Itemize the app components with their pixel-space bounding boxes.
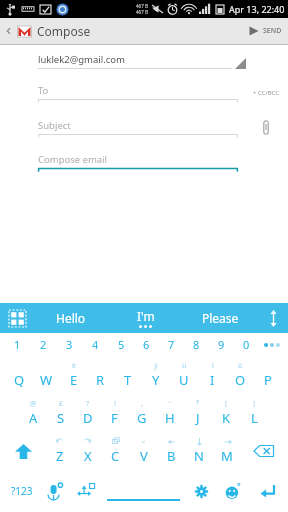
button[interactable]: I'm	[108, 303, 183, 333]
staticText: è	[72, 361, 76, 371]
button[interactable]: Space	[100, 470, 186, 512]
button[interactable]: + CC/BCC	[244, 83, 288, 103]
staticText: I'm	[137, 308, 155, 324]
staticText: luklek2@gmail.com	[38, 53, 125, 66]
staticText: B	[167, 447, 176, 465]
button[interactable]: ↑	[184, 394, 212, 432]
button[interactable]: ý	[142, 356, 170, 394]
button[interactable]: ù	[170, 356, 198, 394]
staticText: I	[210, 371, 215, 389]
staticText: 467 B	[136, 9, 148, 15]
staticText: 467 B	[136, 3, 148, 9]
staticText: SEND	[263, 26, 282, 36]
button[interactable]: Q	[6, 356, 33, 394]
button[interactable]: More symbols	[259, 333, 284, 356]
staticText: L	[251, 409, 258, 427]
button[interactable]: X	[73, 432, 101, 470]
button[interactable]: C	[101, 432, 129, 470]
button[interactable]: Shift	[2, 432, 45, 470]
staticText: E	[70, 371, 78, 389]
staticText: 5	[118, 337, 125, 352]
button[interactable]: ì	[198, 356, 226, 394]
staticText: )	[253, 399, 256, 409]
button[interactable]: ò	[226, 356, 254, 394]
button[interactable]: 1	[4, 333, 30, 356]
button[interactable]: Clipboard	[0, 303, 34, 333]
button[interactable]: è	[60, 356, 87, 394]
staticText: Please	[202, 310, 239, 326]
staticText: ù	[182, 361, 187, 371]
button[interactable]: 9	[209, 333, 234, 356]
button[interactable]: V	[129, 432, 157, 470]
button[interactable]: ?	[74, 394, 101, 432]
button[interactable]: N	[185, 432, 213, 470]
button[interactable]: Expand suggestions	[258, 303, 288, 333]
button[interactable]: Back	[4, 18, 14, 44]
staticText: ì	[212, 361, 214, 371]
button[interactable]: Enter	[249, 470, 285, 512]
button[interactable]: Emoji	[216, 470, 249, 512]
staticText: U	[179, 371, 189, 389]
button[interactable]: ,	[128, 394, 156, 432]
button[interactable]: Attach file	[244, 116, 288, 138]
staticText: @	[30, 399, 37, 409]
staticText: G	[137, 409, 147, 427]
staticText: W	[40, 371, 53, 389]
button[interactable]: M	[213, 432, 241, 470]
staticText: Z	[56, 447, 64, 465]
staticText: Compose	[37, 23, 91, 39]
button[interactable]: 5	[108, 333, 134, 356]
staticText: Apr 13, 22:40	[229, 3, 285, 15]
staticText: D	[83, 409, 93, 427]
button[interactable]: @	[20, 394, 47, 432]
staticText: ?123	[11, 484, 33, 498]
staticText: 8	[193, 337, 200, 352]
staticText: 1	[14, 337, 21, 352]
button[interactable]: 0	[234, 333, 259, 356]
button[interactable]: W	[33, 356, 60, 394]
button[interactable]: 4	[82, 333, 108, 356]
staticText: T	[124, 371, 132, 389]
button[interactable]: T	[114, 356, 142, 394]
staticText: Y	[152, 371, 160, 389]
button[interactable]: !	[101, 394, 128, 432]
staticText: C	[111, 447, 120, 465]
button[interactable]: 8	[184, 333, 209, 356]
button[interactable]: Please	[183, 303, 258, 333]
staticText: 9	[218, 337, 225, 352]
button[interactable]: ?123	[3, 470, 40, 512]
button[interactable]: Move cursor	[70, 470, 100, 512]
staticText: V	[140, 447, 148, 465]
staticText: To	[38, 84, 49, 97]
button[interactable]: Z	[45, 432, 73, 470]
button[interactable]: £	[47, 394, 74, 432]
button[interactable]: 6	[134, 333, 159, 356]
staticText: H	[165, 409, 175, 427]
staticText: 0	[243, 337, 250, 352]
button[interactable]: P	[254, 356, 282, 394]
staticText: £	[59, 399, 64, 409]
button[interactable]: Select account	[232, 51, 246, 69]
button[interactable]: Backspace	[241, 432, 286, 470]
staticText: ý	[154, 361, 158, 371]
button[interactable]: '	[156, 394, 184, 432]
staticText: ?	[86, 399, 90, 409]
staticText: Compose email	[38, 153, 108, 166]
staticText: + CC/BCC	[253, 89, 280, 97]
button[interactable]: Settings	[186, 470, 216, 512]
button[interactable]: )	[240, 394, 268, 432]
button[interactable]: 2	[30, 333, 56, 356]
button[interactable]: 7	[159, 333, 184, 356]
staticText: P	[264, 371, 272, 389]
staticText: 7	[168, 337, 175, 352]
button[interactable]: R	[87, 356, 114, 394]
button[interactable]: SEND	[248, 18, 282, 44]
staticText: '	[169, 399, 171, 409]
button[interactable]: Voice input	[40, 470, 70, 512]
button[interactable]: (	[212, 394, 240, 432]
button[interactable]: 3	[56, 333, 82, 356]
button[interactable]: B	[157, 432, 185, 470]
button[interactable]: Hello	[34, 303, 108, 333]
staticText: J	[196, 409, 200, 427]
staticText: F	[111, 409, 118, 427]
